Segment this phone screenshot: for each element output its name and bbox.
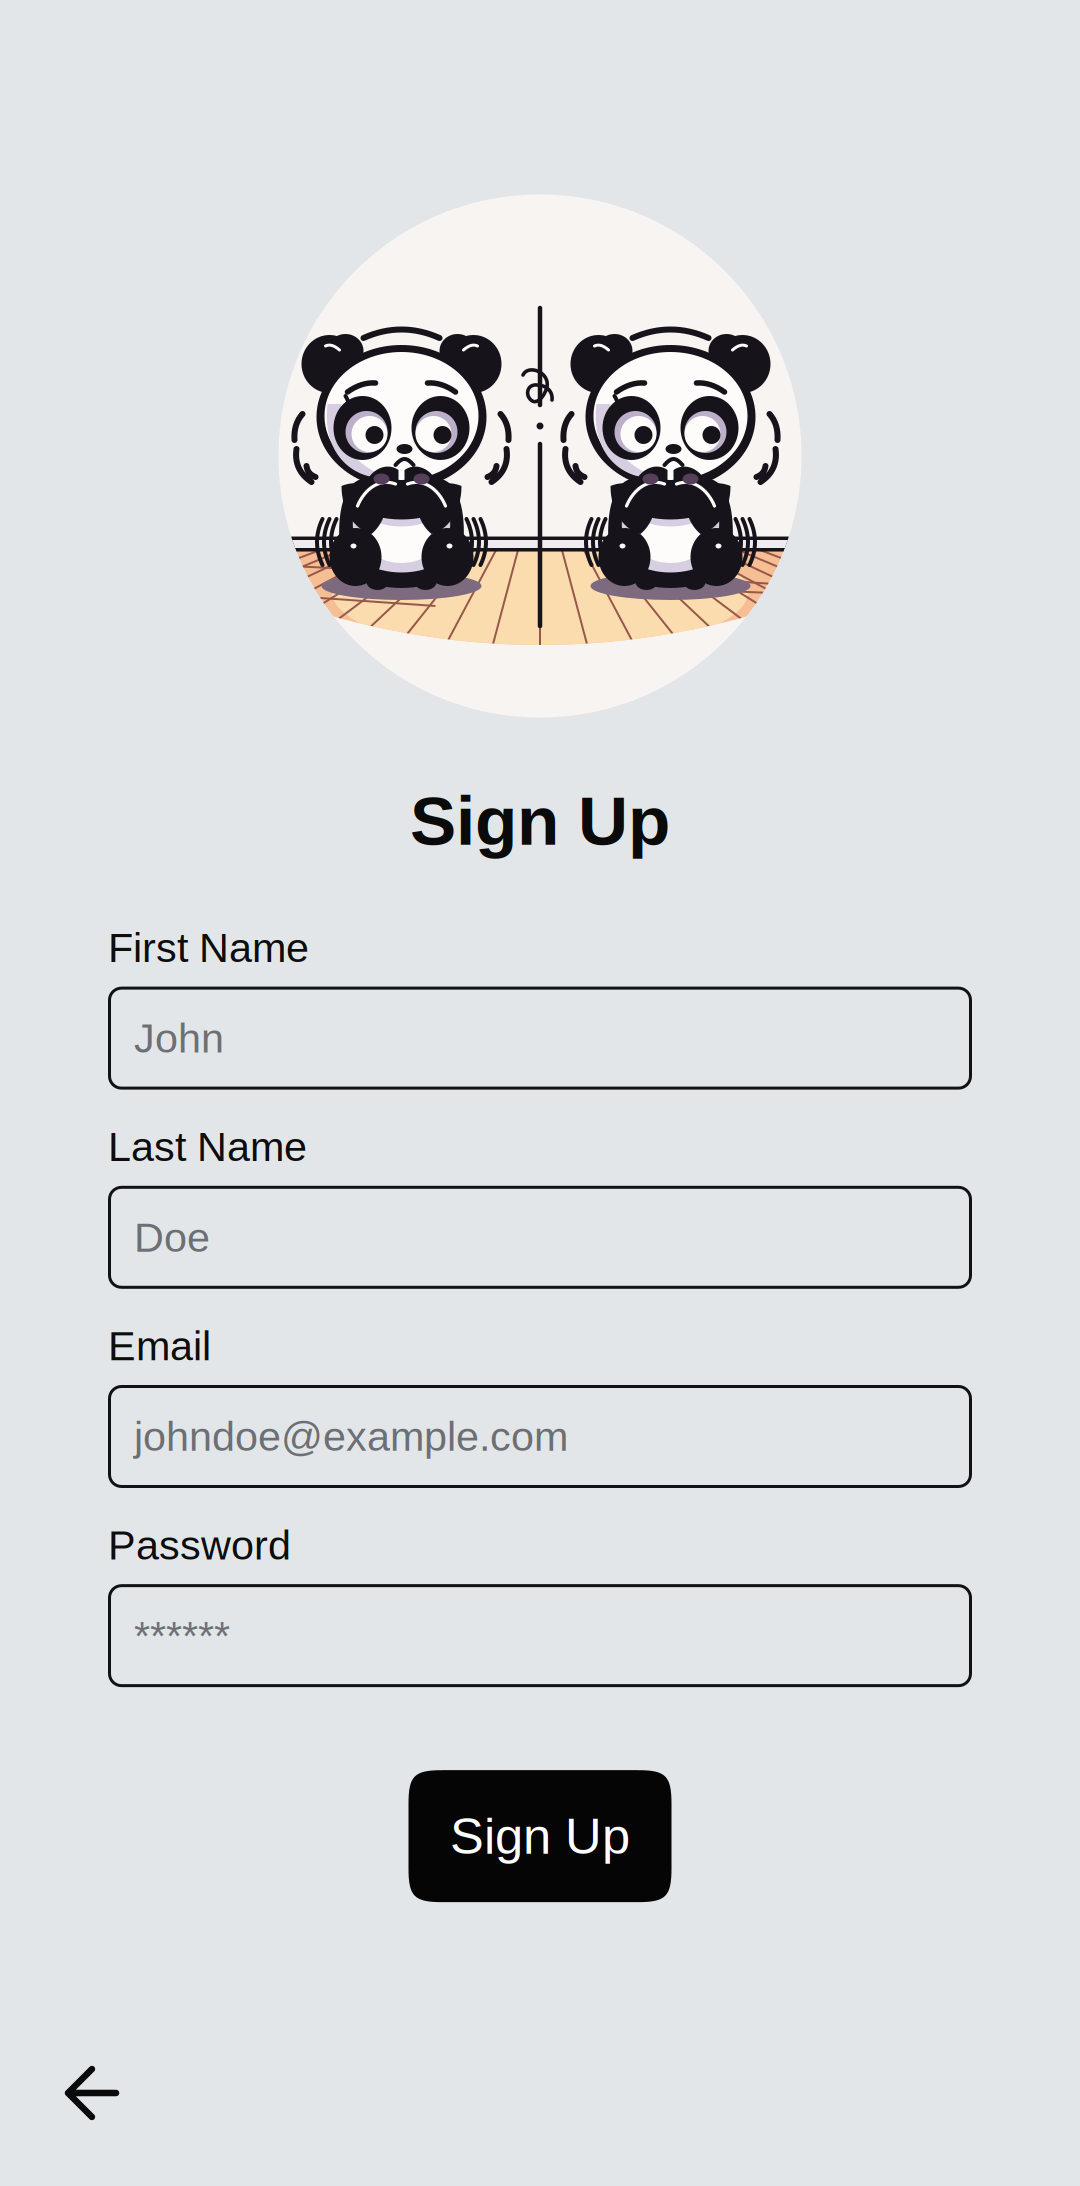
button[interactable]: Sign Up	[408, 1770, 671, 1902]
staticText: Sign Up	[410, 782, 670, 859]
staticText: Last Name	[108, 1124, 307, 1170]
staticText: Password	[108, 1522, 291, 1568]
staticText: Email	[108, 1323, 211, 1369]
staticText: Doe	[134, 1214, 210, 1260]
staticText: johndoe@example.com	[134, 1413, 568, 1460]
staticText: John	[134, 1015, 224, 1061]
staticText: First Name	[108, 924, 309, 971]
staticText: ******	[134, 1613, 230, 1659]
button[interactable]: Back	[47, 2049, 137, 2137]
staticText: Sign Up	[450, 1808, 630, 1864]
